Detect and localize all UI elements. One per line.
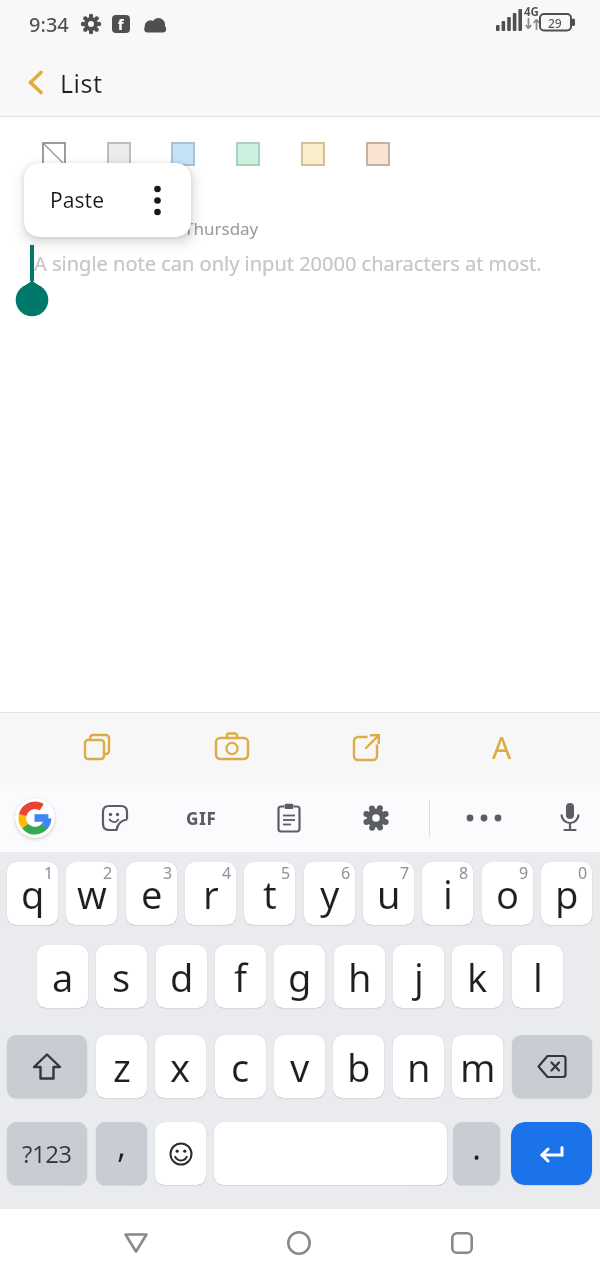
button[interactable] bbox=[155, 1122, 206, 1185]
staticText: A single note can only input 20000 chara… bbox=[34, 250, 542, 277]
button[interactable]: f bbox=[215, 945, 266, 1008]
button[interactable]: n bbox=[393, 1035, 444, 1098]
staticText: b bbox=[347, 1041, 371, 1093]
button[interactable]: s bbox=[96, 945, 147, 1008]
button[interactable] bbox=[15, 798, 55, 838]
staticText: 4 bbox=[222, 862, 232, 884]
button[interactable] bbox=[512, 1035, 592, 1098]
staticText: 3 bbox=[163, 862, 173, 884]
button[interactable]: o bbox=[482, 862, 533, 925]
button[interactable] bbox=[366, 142, 390, 166]
button[interactable] bbox=[107, 142, 131, 166]
staticText: , bbox=[117, 1122, 127, 1168]
button[interactable]: b bbox=[333, 1035, 384, 1098]
button[interactable] bbox=[546, 794, 594, 842]
button[interactable]: z bbox=[96, 1035, 147, 1098]
button[interactable] bbox=[73, 723, 121, 771]
staticText: A bbox=[492, 727, 512, 768]
button[interactable]: m bbox=[452, 1035, 503, 1098]
staticText: h bbox=[348, 951, 372, 1003]
staticText: 6 bbox=[341, 862, 351, 884]
button[interactable] bbox=[511, 1122, 592, 1185]
button[interactable] bbox=[301, 142, 325, 166]
staticText: 4G bbox=[524, 4, 539, 20]
staticText: v bbox=[290, 1041, 310, 1093]
staticText: 9 bbox=[519, 862, 529, 884]
staticText: 8 bbox=[459, 862, 469, 884]
staticText: ?123 bbox=[22, 1137, 72, 1170]
button[interactable]: x bbox=[155, 1035, 206, 1098]
button[interactable]: A bbox=[478, 723, 526, 771]
staticText: d bbox=[170, 951, 194, 1003]
button[interactable] bbox=[265, 794, 313, 842]
button[interactable] bbox=[236, 142, 260, 166]
staticText: i bbox=[443, 868, 453, 920]
button[interactable] bbox=[430, 1211, 494, 1275]
staticText: x bbox=[170, 1041, 191, 1093]
staticText: c bbox=[231, 1041, 250, 1093]
button[interactable]: . bbox=[453, 1122, 500, 1185]
staticText: List bbox=[60, 66, 103, 100]
button[interactable]: a bbox=[37, 945, 88, 1008]
button[interactable] bbox=[104, 1211, 168, 1275]
staticText: k bbox=[467, 951, 488, 1003]
button[interactable]: i bbox=[422, 862, 473, 925]
staticText: f bbox=[234, 951, 248, 1003]
button[interactable] bbox=[18, 62, 58, 102]
staticText: Thursday bbox=[184, 217, 259, 240]
button[interactable] bbox=[267, 1211, 331, 1275]
button[interactable]: d bbox=[156, 945, 207, 1008]
staticText: 2 bbox=[103, 862, 113, 884]
staticText: n bbox=[407, 1041, 431, 1093]
staticText: 7 bbox=[400, 862, 410, 884]
button[interactable]: r bbox=[185, 862, 236, 925]
staticText: g bbox=[288, 951, 312, 1003]
staticText: 29 bbox=[548, 15, 562, 31]
staticText: o bbox=[496, 868, 519, 920]
button[interactable] bbox=[343, 723, 391, 771]
staticText: 5 bbox=[281, 862, 291, 884]
staticText: . bbox=[472, 1124, 482, 1170]
button[interactable]: g bbox=[274, 945, 325, 1008]
staticText: t bbox=[263, 868, 277, 920]
button[interactable]: e bbox=[126, 862, 177, 925]
button[interactable]: h bbox=[334, 945, 385, 1008]
staticText: w bbox=[77, 868, 107, 920]
staticText: 0 bbox=[578, 862, 588, 884]
button[interactable]: p bbox=[541, 862, 592, 925]
button[interactable]: Paste bbox=[24, 163, 191, 237]
staticText: u bbox=[377, 868, 401, 920]
button[interactable] bbox=[171, 142, 195, 166]
button[interactable] bbox=[352, 794, 400, 842]
button[interactable] bbox=[208, 723, 256, 771]
button[interactable] bbox=[7, 1035, 87, 1098]
button[interactable]: c bbox=[215, 1035, 266, 1098]
staticText: l bbox=[533, 951, 543, 1003]
staticText: z bbox=[113, 1041, 131, 1093]
button[interactable]: y bbox=[304, 862, 355, 925]
staticText: q bbox=[21, 868, 45, 920]
staticText: p bbox=[555, 868, 579, 920]
staticText: GIF bbox=[186, 807, 217, 830]
staticText: 9:34 bbox=[29, 11, 69, 38]
staticText: Paste bbox=[50, 186, 104, 215]
button[interactable]: k bbox=[452, 945, 503, 1008]
staticText: e bbox=[141, 868, 163, 920]
button[interactable]: w bbox=[66, 862, 117, 925]
button[interactable]: u bbox=[363, 862, 414, 925]
staticText: s bbox=[112, 951, 131, 1003]
button[interactable]: q bbox=[7, 862, 58, 925]
button[interactable]: v bbox=[274, 1035, 325, 1098]
button[interactable] bbox=[42, 142, 66, 166]
button[interactable]: l bbox=[512, 945, 563, 1008]
button[interactable]: ?123 bbox=[7, 1122, 87, 1185]
button[interactable]: , bbox=[96, 1122, 147, 1185]
staticText: r bbox=[203, 868, 219, 920]
button[interactable]: GIF bbox=[177, 794, 225, 842]
staticText: y bbox=[320, 868, 340, 920]
button[interactable] bbox=[91, 794, 139, 842]
button[interactable]: t bbox=[244, 862, 295, 925]
button[interactable]: j bbox=[393, 945, 444, 1008]
button[interactable] bbox=[460, 794, 508, 842]
